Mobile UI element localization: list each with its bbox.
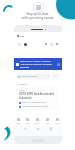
staticText: Dec 01-04 | Beijing China [22,101,46,104]
staticText: Events [25,122,30,124]
button[interactable]: Recents [49,127,53,131]
button[interactable]: Profile [52,116,62,126]
button[interactable]: Circuit overview [17,74,50,79]
staticText: Stay up-to-date with upcoming events [21,12,54,20]
button[interactable]: Back [23,127,27,131]
button[interactable]: Saved [42,116,52,126]
staticText: 17 Events [17,83,28,86]
button[interactable]: More [55,42,59,46]
staticText: Industries [19,96,32,100]
staticText: Home [16,122,21,124]
staticText: China Import Export Centre [22,105,48,108]
button[interactable]: IMPORTANT EVENT UPDATES - DEADLINE Progr… [14,58,62,70]
button[interactable]: Brand [23,42,28,47]
button[interactable]: Home [36,127,40,131]
staticText: Explore [34,122,40,124]
button[interactable]: SERIES [17,87,59,110]
staticText: ROTO EXPO Asia Automobile [19,92,55,96]
staticText: SERIES [19,89,25,91]
button[interactable]: Events [23,116,32,126]
button[interactable]: Home [14,116,23,126]
button[interactable]: Notifications [49,42,54,47]
button[interactable]: Menu [17,42,22,47]
staticText: IMPORTANT EVENT UPDATES - DEADLINE Progr… [20,60,52,69]
button[interactable]: Explore [32,116,42,126]
staticText: Circuit overview [21,75,38,78]
staticText: Profile [55,122,60,124]
button[interactable]: Search [44,42,48,46]
staticText: Saved [45,122,50,124]
